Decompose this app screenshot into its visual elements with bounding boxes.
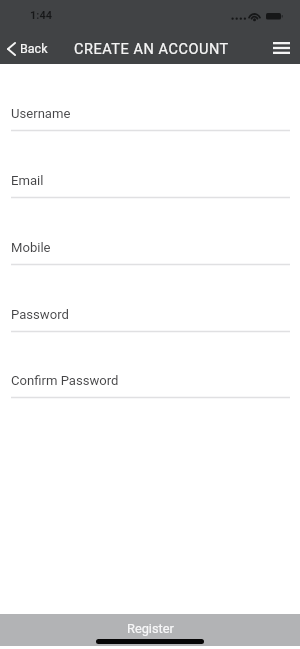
button[interactable]: Mobile — [0, 235, 300, 266]
button[interactable]: Username — [0, 101, 300, 132]
staticText: Mobile — [11, 240, 51, 255]
staticText: Register — [127, 621, 174, 636]
button[interactable]: Password — [0, 302, 300, 333]
staticText: Email — [11, 173, 44, 188]
button[interactable]: Confirm Password — [0, 368, 300, 399]
staticText: Username — [11, 106, 71, 121]
button[interactable]: Menu — [263, 34, 300, 62]
staticText: CREATE AN ACCOUNT — [74, 41, 229, 58]
staticText: Back — [20, 41, 48, 56]
button[interactable]: Register — [0, 614, 300, 646]
button[interactable]: Back — [0, 41, 56, 56]
staticText: Password — [11, 307, 69, 322]
staticText: 1:44 — [30, 9, 53, 22]
button[interactable]: Email — [0, 168, 300, 199]
staticText: Confirm Password — [11, 373, 119, 388]
